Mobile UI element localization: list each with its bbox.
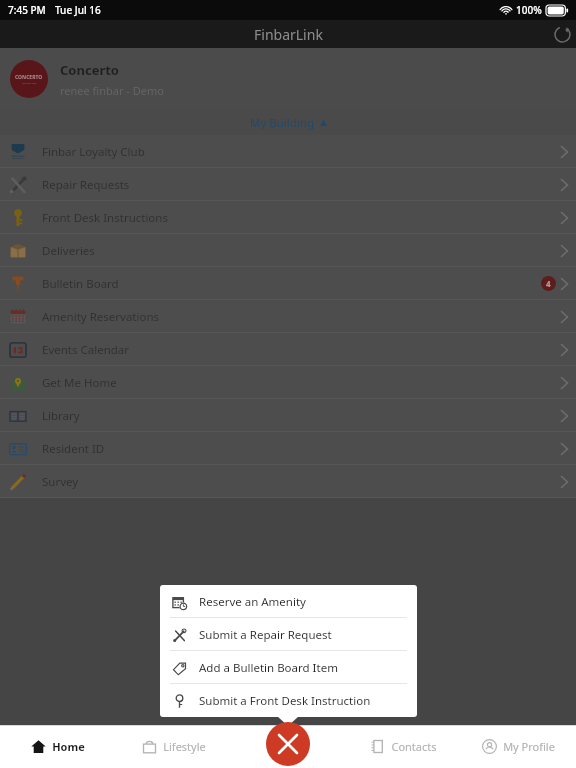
- staticText: Add a Bulletin Board Item: [199, 660, 338, 676]
- staticText: RESIDENCES: [22, 81, 37, 84]
- staticText: 100%: [516, 3, 542, 17]
- staticText: Home: [52, 739, 85, 754]
- staticText: Deliveries: [42, 243, 95, 259]
- button[interactable]: Amenity Reservations: [0, 300, 576, 333]
- staticText: My Building: [250, 115, 315, 131]
- staticText: 7:45 PM: [8, 3, 46, 17]
- staticText: Amenity Reservations: [42, 309, 160, 325]
- staticText: Repair Requests: [42, 177, 130, 193]
- staticText: FinbarLink: [254, 25, 323, 44]
- button[interactable]: Library: [0, 399, 576, 432]
- button[interactable]: Repair Requests: [0, 168, 576, 201]
- button[interactable]: Finbar Loyalty Club: [0, 135, 576, 168]
- staticText: Lifestyle: [163, 739, 206, 754]
- button[interactable]: Home: [0, 725, 116, 768]
- button[interactable]: Events Calendar: [0, 333, 576, 366]
- button[interactable]: Add a Bulletin Board Item: [160, 651, 417, 684]
- button[interactable]: Reserve an Amenity: [160, 585, 417, 618]
- staticText: Survey: [42, 474, 79, 490]
- staticText: Get Me Home: [42, 375, 117, 391]
- staticText: Contacts: [391, 739, 437, 754]
- button[interactable]: Survey: [0, 465, 576, 498]
- staticText: Bulletin Board: [42, 276, 119, 292]
- staticText: Submit a Front Desk Instruction: [199, 693, 371, 709]
- button[interactable]: Lifestyle: [116, 725, 231, 768]
- staticText: Reserve an Amenity: [199, 594, 306, 610]
- staticText: Library: [42, 408, 80, 424]
- staticText: renee finbar - Demo: [60, 83, 164, 98]
- button[interactable]: My Building: [0, 110, 576, 135]
- staticText: My Profile: [503, 739, 555, 754]
- button[interactable]: Bulletin Board: [0, 267, 576, 300]
- staticText: 4: [546, 278, 551, 289]
- button[interactable]: CONCERTO: [0, 48, 576, 110]
- button[interactable]: Deliveries: [0, 234, 576, 267]
- button[interactable]: Front Desk Instructions: [0, 201, 576, 234]
- button[interactable]: Contacts: [346, 725, 461, 768]
- staticText: Tue Jul 16: [55, 3, 101, 17]
- staticText: Front Desk Instructions: [42, 210, 168, 226]
- button[interactable]: Resident ID: [0, 432, 576, 465]
- staticText: Resident ID: [42, 441, 105, 457]
- button[interactable]: Get Me Home: [0, 366, 576, 399]
- button[interactable]: Submit a Repair Request: [160, 618, 417, 651]
- staticText: CONCERTO: [15, 74, 43, 81]
- staticText: Submit a Repair Request: [199, 627, 332, 643]
- button[interactable]: Close menu: [266, 722, 310, 766]
- staticText: Events Calendar: [42, 342, 130, 358]
- button[interactable]: My Profile: [461, 725, 576, 768]
- staticText: Concerto: [60, 61, 119, 79]
- staticText: Finbar Loyalty Club: [42, 144, 145, 160]
- button[interactable]: Refresh: [548, 20, 576, 48]
- button[interactable]: Submit a Front Desk Instruction: [160, 684, 417, 717]
